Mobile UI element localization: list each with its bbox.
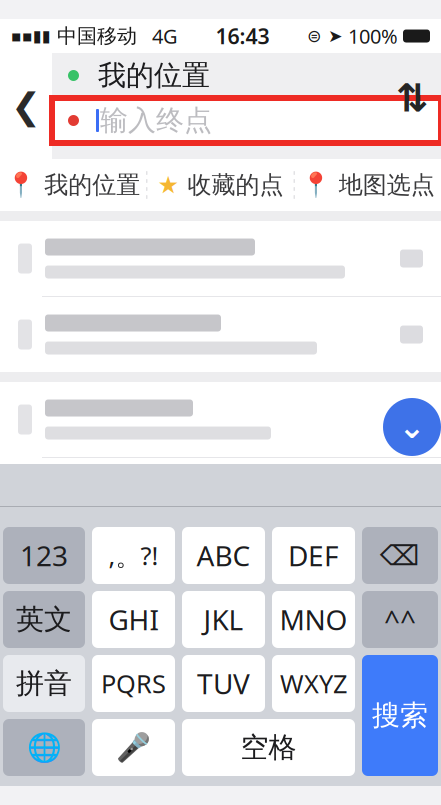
staticText: ⊜ [307, 26, 322, 46]
staticText: ,。?! [108, 539, 158, 572]
staticText: ^^ [384, 601, 416, 638]
button[interactable]: 交换起点与终点 [391, 79, 433, 117]
staticText: 我的位置 [44, 170, 140, 200]
button[interactable] [0, 297, 441, 372]
staticText: 拼音 [16, 666, 72, 701]
staticText: 收藏的点 [187, 170, 283, 200]
staticText: GHI [108, 601, 158, 638]
staticText: 100% [343, 23, 398, 49]
button[interactable]: WXYZ [272, 655, 355, 712]
staticText: JKL [203, 601, 243, 638]
button[interactable]: ,。?! [92, 527, 175, 584]
button[interactable]: 123 [3, 527, 85, 584]
staticText: TUV [197, 665, 250, 702]
staticText: ▪▪▮▮ [11, 27, 51, 45]
staticText: 我的位置 [98, 58, 210, 93]
staticText: 输入终点 [100, 103, 212, 138]
button[interactable]: 定位到当前位置 [383, 398, 441, 456]
staticText: ABC [196, 537, 250, 574]
staticText: 🌐 [26, 731, 61, 763]
button[interactable]: ABC [182, 527, 265, 584]
button[interactable]: TUV [182, 655, 265, 712]
staticText: ⇅ [396, 76, 428, 120]
button[interactable]: 英文 [3, 591, 85, 648]
staticText: ❮ [11, 86, 41, 126]
button[interactable] [0, 382, 441, 457]
button[interactable]: 输入终点 [52, 98, 441, 143]
button[interactable]: DEF [272, 527, 355, 584]
staticText: ⌫ [380, 540, 420, 571]
staticText: ➤ [322, 26, 343, 46]
button[interactable]: 删除 [362, 527, 438, 584]
staticText: PQRS [101, 667, 166, 700]
staticText: 16:43 [215, 22, 269, 50]
button[interactable]: 语音输入 [92, 719, 175, 776]
button[interactable]: 返回 [0, 53, 52, 159]
staticText: 📍 [301, 171, 331, 199]
staticText: DEF [288, 537, 339, 574]
staticText: 4G [137, 23, 178, 49]
staticText: 英文 [16, 602, 72, 637]
button[interactable]: 📍 [0, 159, 146, 211]
button[interactable]: 拼音 [3, 655, 85, 712]
button[interactable]: 表情 [362, 591, 438, 648]
button[interactable]: GHI [92, 591, 175, 648]
staticText: MNO [279, 601, 347, 638]
button[interactable]: 📍 [295, 159, 441, 211]
staticText: ★ [157, 171, 179, 199]
button[interactable]: MNO [272, 591, 355, 648]
button[interactable]: 搜索 [362, 655, 438, 776]
staticText: 🎤 [116, 731, 151, 763]
staticText: 中国移动 [51, 24, 137, 48]
staticText: 搜索 [372, 698, 428, 733]
button[interactable]: 我的位置 [52, 53, 441, 98]
button[interactable]: PQRS [92, 655, 175, 712]
button[interactable]: ★ [147, 159, 294, 211]
staticText: 空格 [240, 730, 296, 765]
staticText: ⌄ [398, 409, 425, 445]
staticText: 123 [20, 537, 68, 574]
staticText: 📍 [6, 171, 36, 199]
staticText: WXYZ [280, 667, 347, 700]
button[interactable]: 切换键盘 [3, 719, 85, 776]
staticText: 地图选点 [339, 170, 435, 200]
button[interactable]: 空格 [182, 719, 355, 776]
button[interactable]: JKL [182, 591, 265, 648]
button[interactable] [0, 221, 441, 296]
